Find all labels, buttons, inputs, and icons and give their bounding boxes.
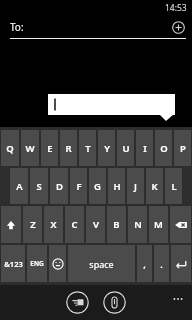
staticText: B	[113, 218, 120, 231]
staticText: .	[160, 258, 163, 270]
button[interactable]: A	[10, 168, 28, 204]
staticText: 14:53	[165, 2, 187, 14]
staticText: To:	[10, 20, 24, 34]
staticText: G	[94, 180, 101, 193]
button[interactable]: Y	[98, 130, 115, 166]
button[interactable]: Backspace	[170, 206, 191, 243]
button[interactable]: space	[68, 245, 135, 282]
staticText: S	[36, 180, 42, 193]
button[interactable]: R	[60, 130, 77, 166]
staticText: H	[113, 180, 121, 193]
button[interactable]: J	[127, 168, 144, 204]
staticText: Q	[6, 142, 14, 155]
button[interactable]: X	[44, 206, 63, 243]
staticText: V	[93, 218, 99, 231]
button[interactable]: O	[155, 130, 172, 166]
button[interactable]: Attach	[103, 291, 126, 314]
button[interactable]: G	[89, 168, 106, 204]
staticText: ENG	[30, 259, 44, 268]
staticText: Y	[104, 142, 110, 155]
button[interactable]: D	[50, 168, 68, 204]
button[interactable]: M	[149, 206, 168, 243]
staticText: K	[151, 180, 158, 193]
staticText: space	[89, 258, 114, 270]
button[interactable]: W	[21, 130, 39, 166]
staticText: P	[180, 142, 186, 155]
button[interactable]: C	[65, 206, 84, 243]
staticText: A	[16, 180, 23, 193]
button[interactable]: T	[79, 130, 96, 166]
staticText: X	[50, 218, 57, 231]
button[interactable]	[48, 94, 175, 121]
button[interactable]: &123	[1, 245, 25, 282]
button[interactable]: E	[41, 130, 58, 166]
staticText: R	[65, 142, 72, 155]
button[interactable]: H	[108, 168, 125, 204]
staticText: Z	[30, 218, 36, 231]
staticText: N	[134, 218, 142, 231]
staticText: M	[154, 218, 163, 231]
staticText: I	[143, 142, 147, 155]
button[interactable]: S	[30, 168, 48, 204]
button[interactable]: ,	[137, 245, 152, 282]
button[interactable]: Add recipient	[170, 19, 186, 35]
button[interactable]: Q	[1, 130, 19, 166]
staticText: L	[171, 180, 177, 193]
staticText: D	[56, 180, 63, 193]
button[interactable]: L	[165, 168, 182, 204]
button[interactable]: ENG	[27, 245, 47, 282]
staticText: ,	[143, 258, 146, 270]
staticText: J	[134, 180, 137, 193]
staticText: O	[160, 142, 168, 155]
button[interactable]: I	[136, 130, 153, 166]
button[interactable]: P	[174, 130, 191, 166]
staticText: T	[85, 142, 91, 155]
staticText: C	[71, 218, 78, 231]
button[interactable]: More options	[169, 290, 187, 308]
button[interactable]: .	[154, 245, 169, 282]
button[interactable]: F	[70, 168, 87, 204]
button[interactable]: Emoji	[49, 245, 66, 282]
button[interactable]: Z	[23, 206, 42, 243]
staticText: W	[25, 142, 35, 155]
staticText: U	[122, 142, 130, 155]
button[interactable]: K	[146, 168, 163, 204]
button[interactable]: V	[86, 206, 105, 243]
button[interactable]: N	[128, 206, 147, 243]
button[interactable]: U	[117, 130, 134, 166]
button[interactable]: Send	[66, 291, 89, 314]
button[interactable]: Shift	[1, 206, 21, 243]
staticText: F	[76, 180, 82, 193]
button[interactable]: Enter	[171, 245, 191, 282]
staticText: &123	[4, 259, 23, 269]
staticText: E	[47, 142, 53, 155]
button[interactable]: B	[107, 206, 126, 243]
